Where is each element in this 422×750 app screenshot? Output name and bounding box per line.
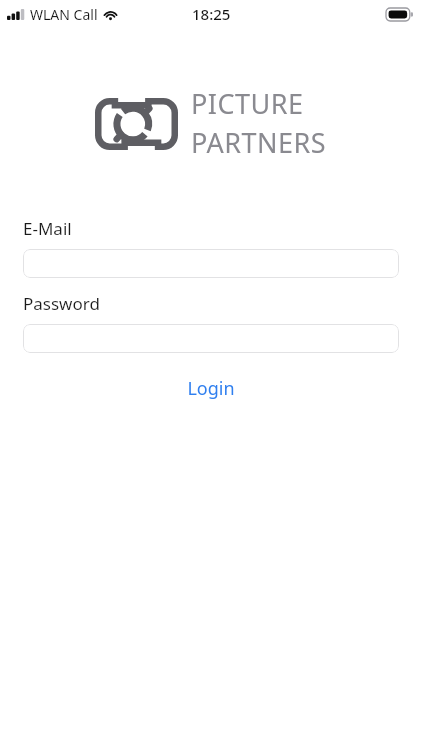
staticText: WLAN Call [30,5,98,24]
button[interactable]: Password input field [23,324,399,353]
button[interactable]: E-Mail input field [23,249,399,278]
staticText: Login [187,376,235,401]
staticText: 18:25 [192,4,231,24]
staticText: PICTURE [191,85,304,122]
button[interactable]: Login [23,369,399,408]
staticText: Password [23,292,100,315]
staticText: E-Mail [23,217,72,240]
staticText: PARTNERS [191,124,327,161]
